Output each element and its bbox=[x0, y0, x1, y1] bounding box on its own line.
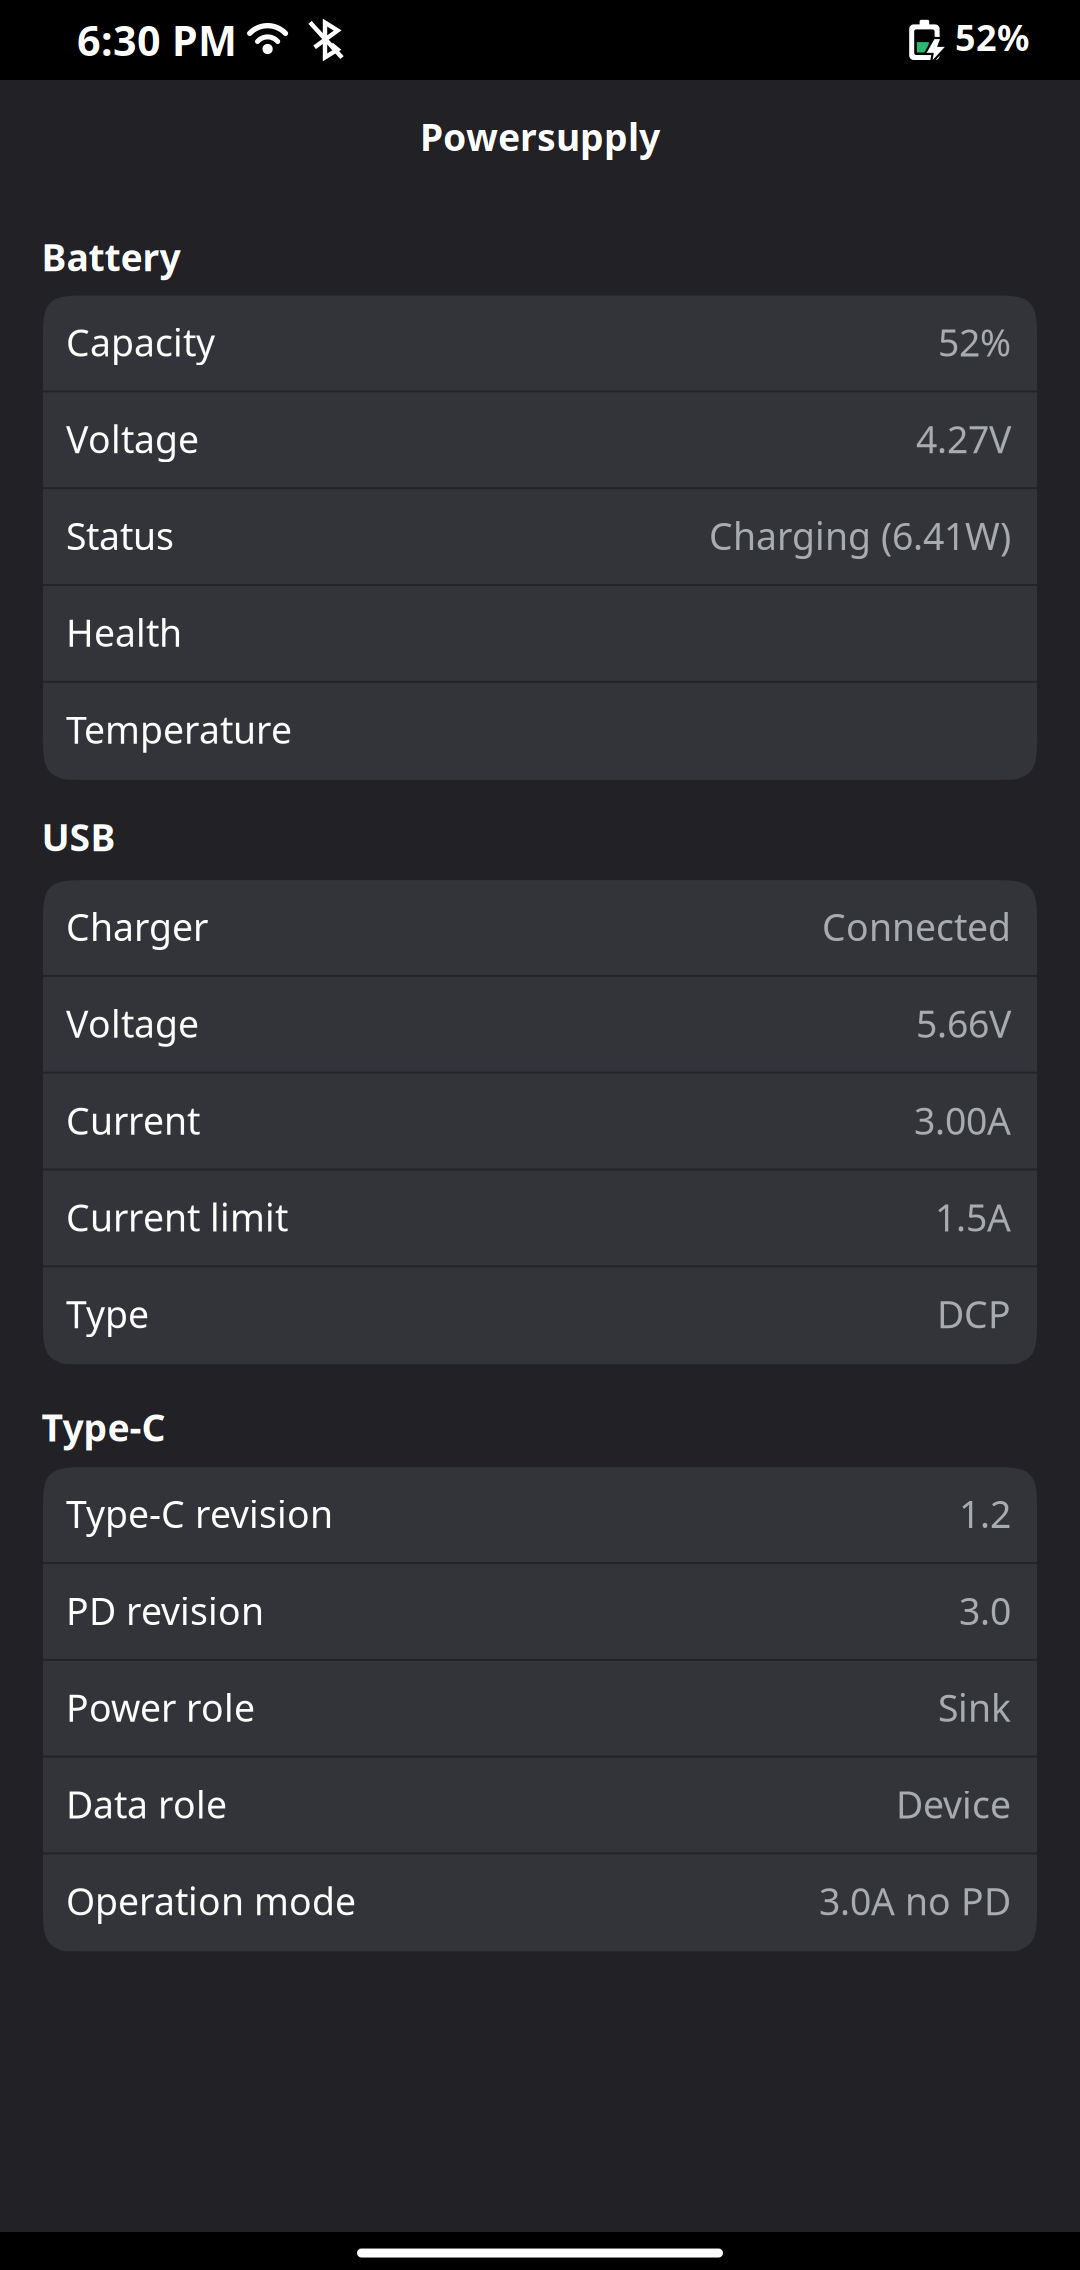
staticText: 1.5A bbox=[935, 1192, 1011, 1242]
staticText: Charger bbox=[66, 902, 208, 951]
button[interactable]: Type-C revision bbox=[43, 1467, 1037, 1564]
staticText: 1.2 bbox=[959, 1489, 1011, 1538]
staticText: Powersupply bbox=[420, 112, 660, 161]
staticText: 52% bbox=[955, 13, 1029, 61]
staticText: Power role bbox=[66, 1682, 255, 1732]
button[interactable]: Temperature bbox=[43, 683, 1037, 780]
button[interactable]: Current bbox=[43, 1074, 1037, 1171]
staticText: Health bbox=[66, 608, 182, 657]
staticText: Battery bbox=[41, 232, 180, 282]
staticText: Data role bbox=[66, 1779, 227, 1829]
button[interactable]: Capacity bbox=[43, 296, 1037, 392]
staticText: Operation mode bbox=[66, 1876, 356, 1926]
staticText: Device bbox=[896, 1779, 1011, 1829]
button[interactable]: Data role bbox=[43, 1758, 1037, 1854]
staticText: 52% bbox=[938, 317, 1011, 367]
staticText: Capacity bbox=[66, 317, 215, 367]
staticText: 5.66V bbox=[916, 999, 1011, 1048]
staticText: Type-C revision bbox=[66, 1489, 333, 1538]
staticText: Voltage bbox=[66, 414, 199, 464]
staticText: USB bbox=[41, 812, 115, 862]
staticText: Connected bbox=[822, 902, 1011, 951]
staticText: 3.0A no PD bbox=[819, 1876, 1011, 1926]
staticText: Temperature bbox=[66, 704, 292, 754]
button[interactable]: PD revision bbox=[43, 1564, 1037, 1661]
staticText: Type bbox=[66, 1289, 149, 1339]
staticText: PD revision bbox=[66, 1586, 264, 1635]
staticText: Type-C bbox=[41, 1402, 165, 1452]
staticText: 6:30 PM bbox=[77, 13, 237, 67]
staticText: DCP bbox=[937, 1289, 1011, 1339]
staticText: Charging (6.41W) bbox=[709, 511, 1011, 560]
button[interactable]: Charger bbox=[43, 880, 1037, 977]
staticText: 4.27V bbox=[916, 414, 1011, 464]
button[interactable]: Voltage bbox=[43, 977, 1037, 1074]
button[interactable]: Power role bbox=[43, 1661, 1037, 1758]
button[interactable]: Status bbox=[43, 489, 1037, 586]
staticText: Current limit bbox=[66, 1192, 288, 1242]
staticText: Voltage bbox=[66, 999, 199, 1048]
staticText: Status bbox=[66, 511, 174, 560]
staticText: 3.00A bbox=[914, 1095, 1011, 1145]
staticText: Sink bbox=[938, 1682, 1011, 1732]
staticText: 3.0 bbox=[959, 1586, 1011, 1635]
button[interactable]: Voltage bbox=[43, 392, 1037, 489]
button[interactable]: Current limit bbox=[43, 1171, 1037, 1267]
button[interactable]: Type bbox=[43, 1267, 1037, 1364]
button[interactable]: Health bbox=[43, 586, 1037, 683]
staticText: Current bbox=[66, 1095, 200, 1145]
button[interactable]: Operation mode bbox=[43, 1854, 1037, 1951]
